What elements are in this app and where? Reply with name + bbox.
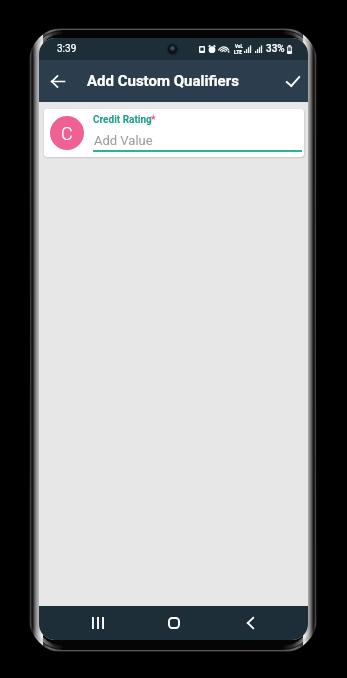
staticText: 3:39 xyxy=(57,43,77,55)
button[interactable]: Back xyxy=(45,68,71,94)
staticText: * xyxy=(151,114,156,126)
staticText: Credit Rating xyxy=(93,114,152,126)
staticText: LTE xyxy=(234,49,243,55)
button[interactable]: C xyxy=(44,109,304,157)
staticText: C xyxy=(61,123,73,144)
button[interactable]: Back xyxy=(230,612,270,634)
button[interactable]: Save xyxy=(280,68,306,94)
button[interactable]: Recent apps xyxy=(78,612,118,634)
staticText: 33% xyxy=(266,43,285,55)
staticText: Add Custom Qualifiers xyxy=(87,72,239,90)
staticText: Add Value xyxy=(94,133,153,148)
button[interactable]: Home xyxy=(154,612,194,634)
staticText: VoL xyxy=(235,44,243,49)
